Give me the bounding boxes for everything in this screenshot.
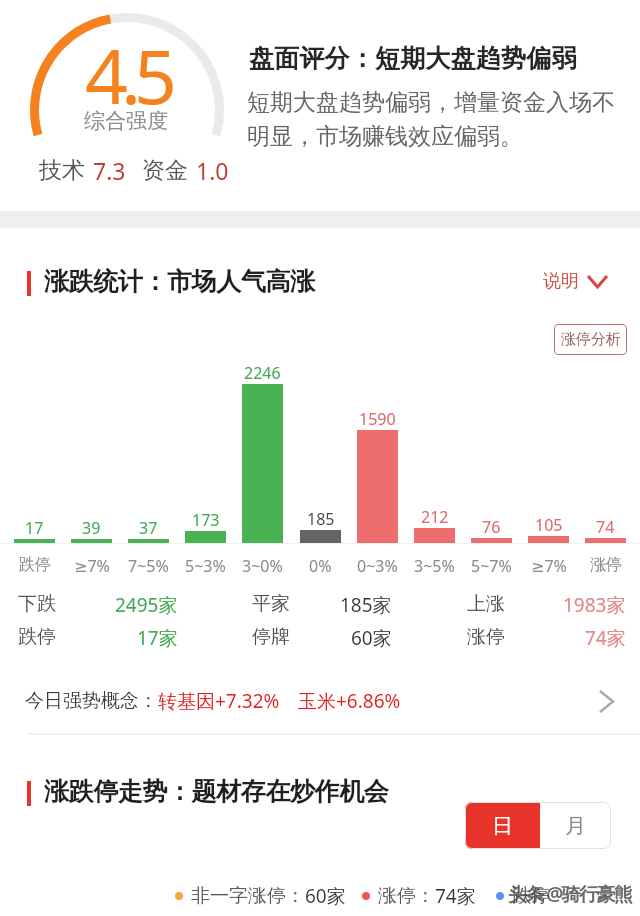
- staticText: 212: [421, 506, 449, 528]
- staticText: 17家: [137, 625, 178, 651]
- staticText: 说明: [543, 270, 579, 293]
- staticText: 7~5%: [128, 555, 169, 577]
- staticText: 0%: [309, 555, 332, 577]
- staticText: 今日强势概念：: [25, 689, 158, 713]
- staticText: 5~7%: [471, 555, 512, 577]
- staticText: 头条 @骑行豪熊: [508, 881, 632, 907]
- staticText: 5~3%: [185, 555, 226, 577]
- staticText: 综合强度: [84, 108, 168, 134]
- staticText: 39: [82, 517, 101, 539]
- staticText: 60家: [305, 883, 346, 909]
- staticText: 1.0: [196, 155, 229, 186]
- staticText: 下跌: [18, 592, 56, 616]
- staticText: 非一字涨停：: [191, 884, 305, 908]
- staticText: 玉米+6.86%: [298, 688, 401, 714]
- staticText: 7.3: [93, 155, 126, 186]
- staticText: 转基因+7.32%: [158, 688, 280, 714]
- button[interactable]: 月: [540, 802, 611, 849]
- staticText: 涨停: [467, 625, 505, 649]
- staticText: 涨跌停走势：题材存在炒作机会: [44, 776, 389, 807]
- button[interactable]: 说明: [539, 266, 611, 297]
- staticText: 上涨: [467, 592, 505, 616]
- staticText: 涨停: [590, 555, 622, 575]
- staticText: 37: [139, 517, 158, 539]
- button[interactable]: 今日强势概念：: [0, 667, 640, 735]
- staticText: 105: [535, 514, 563, 536]
- staticText: 3~0%: [242, 555, 283, 577]
- staticText: 4.5: [85, 24, 170, 126]
- staticText: 185家: [340, 592, 392, 618]
- staticText: 停牌: [252, 625, 290, 649]
- button[interactable]: 涨停分析: [554, 324, 627, 355]
- staticText: ≥7%: [74, 555, 110, 577]
- staticText: ≥7%: [531, 555, 567, 577]
- staticText: 平家: [252, 592, 290, 616]
- staticText: 2246: [244, 362, 281, 384]
- staticText: 185: [307, 508, 335, 530]
- staticText: 173: [192, 509, 220, 531]
- staticText: 74家: [435, 883, 476, 909]
- staticText: 涨停：: [378, 884, 435, 908]
- staticText: 月: [565, 813, 586, 839]
- staticText: 1590: [359, 408, 396, 430]
- staticText: 涨跌统计：市场人气高涨: [44, 266, 315, 297]
- staticText: 盘面评分：短期大盘趋势偏弱: [249, 43, 577, 74]
- staticText: 3~5%: [414, 555, 455, 577]
- staticText: 17: [25, 517, 44, 539]
- staticText: 76: [482, 516, 501, 538]
- staticText: 74家: [585, 625, 626, 651]
- staticText: 74: [596, 516, 615, 538]
- staticText: 0~3%: [357, 555, 398, 577]
- staticText: 资金: [142, 156, 188, 185]
- staticText: 1983家: [563, 592, 626, 618]
- staticText: 短期大盘趋势偏弱，增量资金入场不明显，市场赚钱效应偏弱。: [247, 88, 625, 151]
- staticText: 跌停: [512, 884, 550, 908]
- staticText: 技术: [39, 156, 85, 185]
- staticText: 日: [492, 813, 513, 839]
- staticText: 涨停分析: [561, 330, 621, 349]
- staticText: 跌停: [19, 555, 51, 575]
- other: 查看更多: [600, 691, 613, 712]
- staticText: 2495家: [115, 592, 178, 618]
- staticText: 跌停: [18, 625, 56, 649]
- button[interactable]: 日: [465, 802, 540, 849]
- staticText: 60家: [351, 625, 392, 651]
